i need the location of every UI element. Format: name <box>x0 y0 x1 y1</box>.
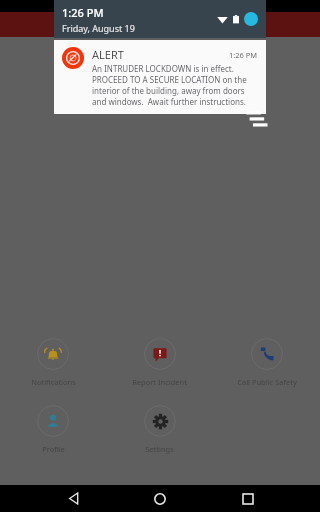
button[interactable]: Call Public Safety <box>213 336 320 389</box>
staticText: An INTRUDER LOCKDOWN is in effect. PROCE… <box>92 63 258 107</box>
button[interactable]: Profile <box>0 403 106 456</box>
staticText: Profile <box>42 444 65 454</box>
staticText: 1:26 PM <box>62 5 104 20</box>
button[interactable]: ALERT <box>54 40 266 114</box>
button[interactable]: Notifications <box>0 336 106 389</box>
button[interactable]: Home <box>145 485 175 512</box>
staticText: 1:26 PM <box>229 50 258 60</box>
staticText: ALERT <box>92 47 124 62</box>
staticText: Call Public Safety <box>237 377 297 387</box>
button[interactable]: Settings <box>106 403 213 456</box>
button[interactable]: Recent apps <box>233 485 263 512</box>
staticText: Report Incident <box>132 377 187 387</box>
button[interactable]: Sort notifications <box>244 104 272 132</box>
button[interactable]: Report Incident <box>106 336 213 389</box>
staticText: Notifications <box>31 377 76 387</box>
button[interactable]: Back <box>58 485 88 512</box>
staticText: Friday, August 19 <box>62 22 135 34</box>
staticText: Settings <box>145 444 174 454</box>
